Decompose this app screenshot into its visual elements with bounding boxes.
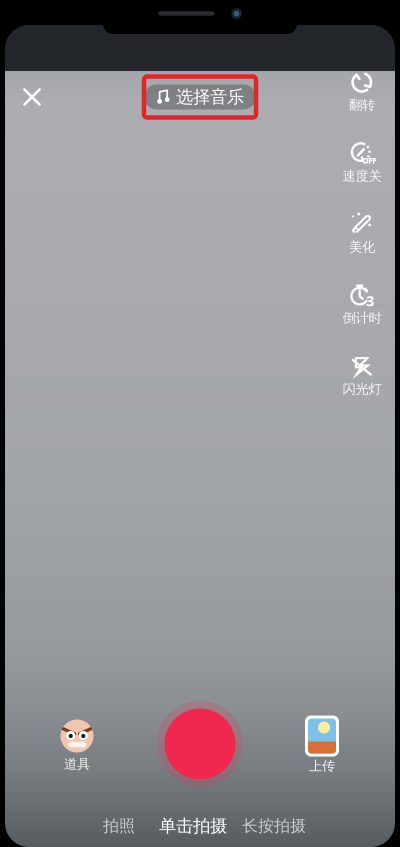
staticText: 3 — [366, 291, 374, 310]
staticText: 美化 — [349, 239, 375, 255]
staticText: 选择音乐 — [176, 86, 244, 108]
button[interactable]: 翻转 — [331, 67, 393, 138]
button[interactable]: 长按拍摄 — [234, 812, 314, 840]
staticText: 速度关 — [342, 168, 381, 184]
staticText: 单击拍摄 — [159, 815, 227, 837]
button[interactable]: 闪光灯 — [331, 351, 393, 422]
button[interactable]: 上传 — [284, 704, 360, 784]
staticText: 道具 — [64, 756, 90, 772]
staticText: 上传 — [309, 758, 335, 774]
button[interactable]: Close — [10, 78, 54, 116]
button[interactable]: 单击拍摄 — [152, 812, 234, 840]
button[interactable]: Record — [153, 697, 247, 791]
button[interactable]: OFF — [331, 138, 393, 209]
staticText: 拍照 — [103, 816, 135, 836]
button[interactable]: 拍照 — [86, 812, 152, 840]
button[interactable]: 道具 — [39, 704, 115, 784]
staticText: 长按拍摄 — [242, 816, 306, 836]
staticText: 倒计时 — [342, 310, 381, 326]
button[interactable]: 3 — [331, 280, 393, 351]
staticText: OFF — [362, 155, 376, 166]
staticText: 翻转 — [349, 97, 375, 113]
button[interactable]: 选择音乐 — [144, 84, 256, 109]
staticText: 闪光灯 — [342, 381, 381, 397]
button[interactable]: 美化 — [331, 209, 393, 280]
